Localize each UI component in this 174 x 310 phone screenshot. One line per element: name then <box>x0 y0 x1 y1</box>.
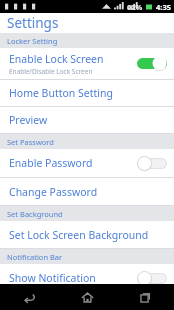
button[interactable]: Recent apps <box>116 284 174 310</box>
button[interactable]: Enable Password <box>0 149 174 177</box>
staticText: Enable/Disable Lock Screen <box>9 67 93 76</box>
staticText: Settings <box>7 14 59 32</box>
button[interactable]: Home <box>58 284 116 310</box>
button[interactable]: Home Button Setting <box>0 80 174 106</box>
button[interactable]: Show Notification, off <box>137 271 167 284</box>
button[interactable]: Enable Lock Screen <box>0 48 174 79</box>
staticText: 62% <box>127 2 143 12</box>
staticText: Show Notification <box>9 271 96 284</box>
button[interactable]: Preview <box>0 107 174 133</box>
button[interactable]: Enable Lock Screen, on <box>137 56 167 71</box>
button[interactable]: Change Password <box>0 178 174 205</box>
button[interactable]: Show Notification <box>0 264 174 284</box>
button[interactable]: Set Lock Screen Background <box>0 221 174 248</box>
staticText: Preview <box>9 113 48 127</box>
staticText: Set Lock Screen Background <box>9 228 149 242</box>
staticText: Home Button Setting <box>9 86 113 100</box>
staticText: Enable Password <box>9 156 93 170</box>
staticText: Enable Lock Screen <box>9 52 104 66</box>
button[interactable]: Back <box>0 284 58 310</box>
staticText: Locker Setting <box>7 36 58 46</box>
staticText: Set Background <box>7 209 63 219</box>
button[interactable]: Enable Password, off <box>137 156 167 171</box>
staticText: 4:35 <box>156 2 171 12</box>
staticText: Change Password <box>9 185 98 199</box>
staticText: Set Password <box>7 137 54 147</box>
staticText: Notification Bar <box>7 252 63 262</box>
